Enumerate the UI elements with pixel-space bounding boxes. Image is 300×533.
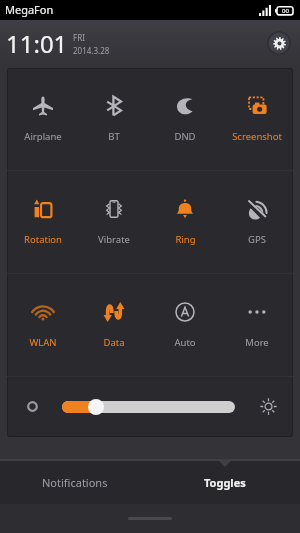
staticText: 2014.3.28 [73, 45, 110, 56]
button[interactable]: Screenshot [221, 68, 293, 170]
button[interactable]: Settings [267, 31, 291, 55]
staticText: DND [174, 130, 196, 143]
button[interactable]: More [221, 274, 293, 376]
staticText: Ring [175, 233, 196, 246]
button[interactable]: Rotation [7, 171, 78, 273]
button[interactable]: Vibrate [78, 171, 149, 273]
staticText: GPS [248, 233, 266, 246]
button[interactable]: Notifications [0, 461, 150, 504]
staticText: FRI [73, 32, 85, 43]
staticText: MegaFon [5, 2, 54, 17]
staticText: Rotation [24, 233, 62, 246]
staticText: Airplane [24, 130, 62, 143]
staticText: 00 [282, 7, 289, 15]
button[interactable]: DND [149, 68, 221, 170]
staticText: Data [103, 336, 125, 349]
button[interactable]: BT [78, 68, 149, 170]
staticText: 11:01 [6, 27, 68, 60]
button[interactable]: WLAN [7, 274, 78, 376]
button[interactable]: Airplane [7, 68, 78, 170]
staticText: WLAN [29, 336, 57, 349]
staticText: Auto [174, 336, 196, 349]
button[interactable]: GPS [221, 171, 293, 273]
staticText: BT [108, 130, 120, 143]
button[interactable]: Ring [149, 171, 221, 273]
button[interactable]: Toggles [150, 461, 300, 504]
staticText: Vibrate [98, 233, 130, 246]
button[interactable]: Auto [149, 274, 221, 376]
staticText: Toggles [204, 475, 246, 490]
staticText: Screenshot [232, 130, 282, 143]
staticText: More [245, 336, 269, 349]
staticText: Notifications [42, 475, 108, 490]
button[interactable]: Data [78, 274, 149, 376]
